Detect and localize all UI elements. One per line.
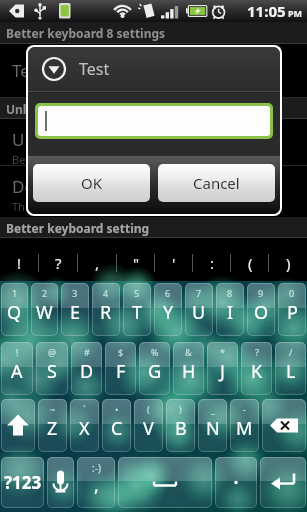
staticText: K xyxy=(251,359,263,384)
button[interactable]: Emoticon xyxy=(77,457,115,508)
staticText: ! xyxy=(17,253,22,273)
button[interactable]: ( xyxy=(231,245,269,281)
button[interactable]: 1 xyxy=(1,283,28,336)
staticText: D xyxy=(80,359,94,384)
button[interactable]: Unlock xyxy=(0,119,307,165)
button[interactable]: 9 xyxy=(247,283,275,336)
button[interactable]: ! xyxy=(1,342,33,395)
staticText: 2 xyxy=(42,287,48,299)
staticText: J xyxy=(220,359,225,384)
staticText: 5 xyxy=(134,287,140,299)
button[interactable]: 8 xyxy=(216,283,244,336)
staticText: @ xyxy=(48,346,57,358)
button[interactable]: ) xyxy=(269,245,307,281)
staticText: R xyxy=(100,300,112,325)
staticText: H xyxy=(182,359,196,384)
button[interactable]: ' xyxy=(155,245,193,281)
button[interactable]: , xyxy=(78,245,117,281)
staticText: W xyxy=(36,300,53,325)
button[interactable]: 4 xyxy=(92,283,120,336)
button[interactable]: • xyxy=(102,399,131,452)
button[interactable]: Cancel xyxy=(158,164,275,202)
button[interactable]: Enter xyxy=(260,457,306,508)
staticText: ' xyxy=(172,253,176,273)
button[interactable]: 0 xyxy=(278,283,306,336)
button[interactable]: - xyxy=(230,399,259,452)
staticText: ? xyxy=(255,346,259,358)
staticText: ~ xyxy=(50,403,56,415)
button[interactable]: 3 xyxy=(61,283,89,336)
button[interactable]: ` xyxy=(70,399,99,452)
staticText: 9 xyxy=(258,287,264,299)
staticText: Test xyxy=(12,59,45,82)
button[interactable]: Period xyxy=(215,457,257,508)
staticText: Y xyxy=(163,300,174,325)
staticText: 1 xyxy=(12,287,18,299)
staticText: Test xyxy=(79,58,110,80)
staticText: M xyxy=(236,416,253,441)
button[interactable]: OK xyxy=(33,164,150,202)
button[interactable]: Voice input xyxy=(47,457,74,508)
staticText: B xyxy=(175,416,187,441)
staticText: Q xyxy=(7,300,22,325)
staticText: X xyxy=(79,416,90,441)
button[interactable]: Space xyxy=(118,457,212,508)
staticText: OK xyxy=(81,173,103,193)
staticText: / xyxy=(289,346,293,358)
button[interactable] xyxy=(38,106,270,136)
staticText: Donate xyxy=(12,175,71,198)
staticText: ) xyxy=(179,403,182,415)
button[interactable]: 2 xyxy=(31,283,58,336)
staticText: - xyxy=(243,403,246,415)
button[interactable]: # xyxy=(71,342,102,395)
button[interactable]: : xyxy=(193,245,231,281)
staticText: ` xyxy=(83,403,86,415)
staticText: 11:05 xyxy=(247,1,286,21)
button[interactable]: 6 xyxy=(154,283,182,336)
staticText: ( xyxy=(147,403,150,415)
staticText: This is a donate version xyxy=(12,199,134,214)
staticText: Better keyboard xyxy=(12,152,96,165)
button[interactable]: _ xyxy=(198,399,227,452)
staticText: 0 xyxy=(289,287,295,299)
staticText: , xyxy=(94,473,99,498)
button[interactable]: ? xyxy=(39,245,78,281)
staticText: % xyxy=(151,346,159,358)
staticText: " xyxy=(133,253,140,273)
staticText: T xyxy=(132,300,143,325)
button[interactable]: ( xyxy=(134,399,163,452)
button[interactable]: 5 xyxy=(123,283,151,336)
staticText: 4 xyxy=(103,287,109,299)
button[interactable]: ?123 xyxy=(1,457,44,508)
staticText: G xyxy=(148,359,162,384)
button[interactable]: / xyxy=(275,342,306,395)
staticText: • xyxy=(115,403,119,415)
staticText: 3 xyxy=(72,287,78,299)
button[interactable]: % xyxy=(139,342,170,395)
staticText: $ xyxy=(118,346,124,358)
staticText: 8 xyxy=(227,287,233,299)
staticText: I xyxy=(227,300,234,325)
staticText: V xyxy=(143,416,154,441)
button[interactable]: " xyxy=(117,245,155,281)
button[interactable]: Donate xyxy=(0,166,307,217)
button[interactable]: $ xyxy=(105,342,136,395)
button[interactable]: ? xyxy=(241,342,272,395)
staticText: ! xyxy=(16,346,19,358)
button[interactable]: & xyxy=(173,342,204,395)
button[interactable]: Shift xyxy=(1,399,35,452)
staticText: , xyxy=(95,253,100,273)
button[interactable]: @ xyxy=(36,342,68,395)
staticText: Z xyxy=(47,416,58,441)
staticText: U xyxy=(192,300,206,325)
button[interactable]: * xyxy=(207,342,238,395)
staticText: L xyxy=(286,359,296,384)
button[interactable]: ! xyxy=(0,245,39,281)
button[interactable]: ~ xyxy=(38,399,67,452)
staticText: : xyxy=(210,253,215,273)
button[interactable]: Test xyxy=(0,44,307,97)
button[interactable]: ) xyxy=(166,399,195,452)
button[interactable]: 7 xyxy=(185,283,213,336)
staticText: & xyxy=(185,346,192,358)
button[interactable]: Backspace xyxy=(262,399,306,452)
